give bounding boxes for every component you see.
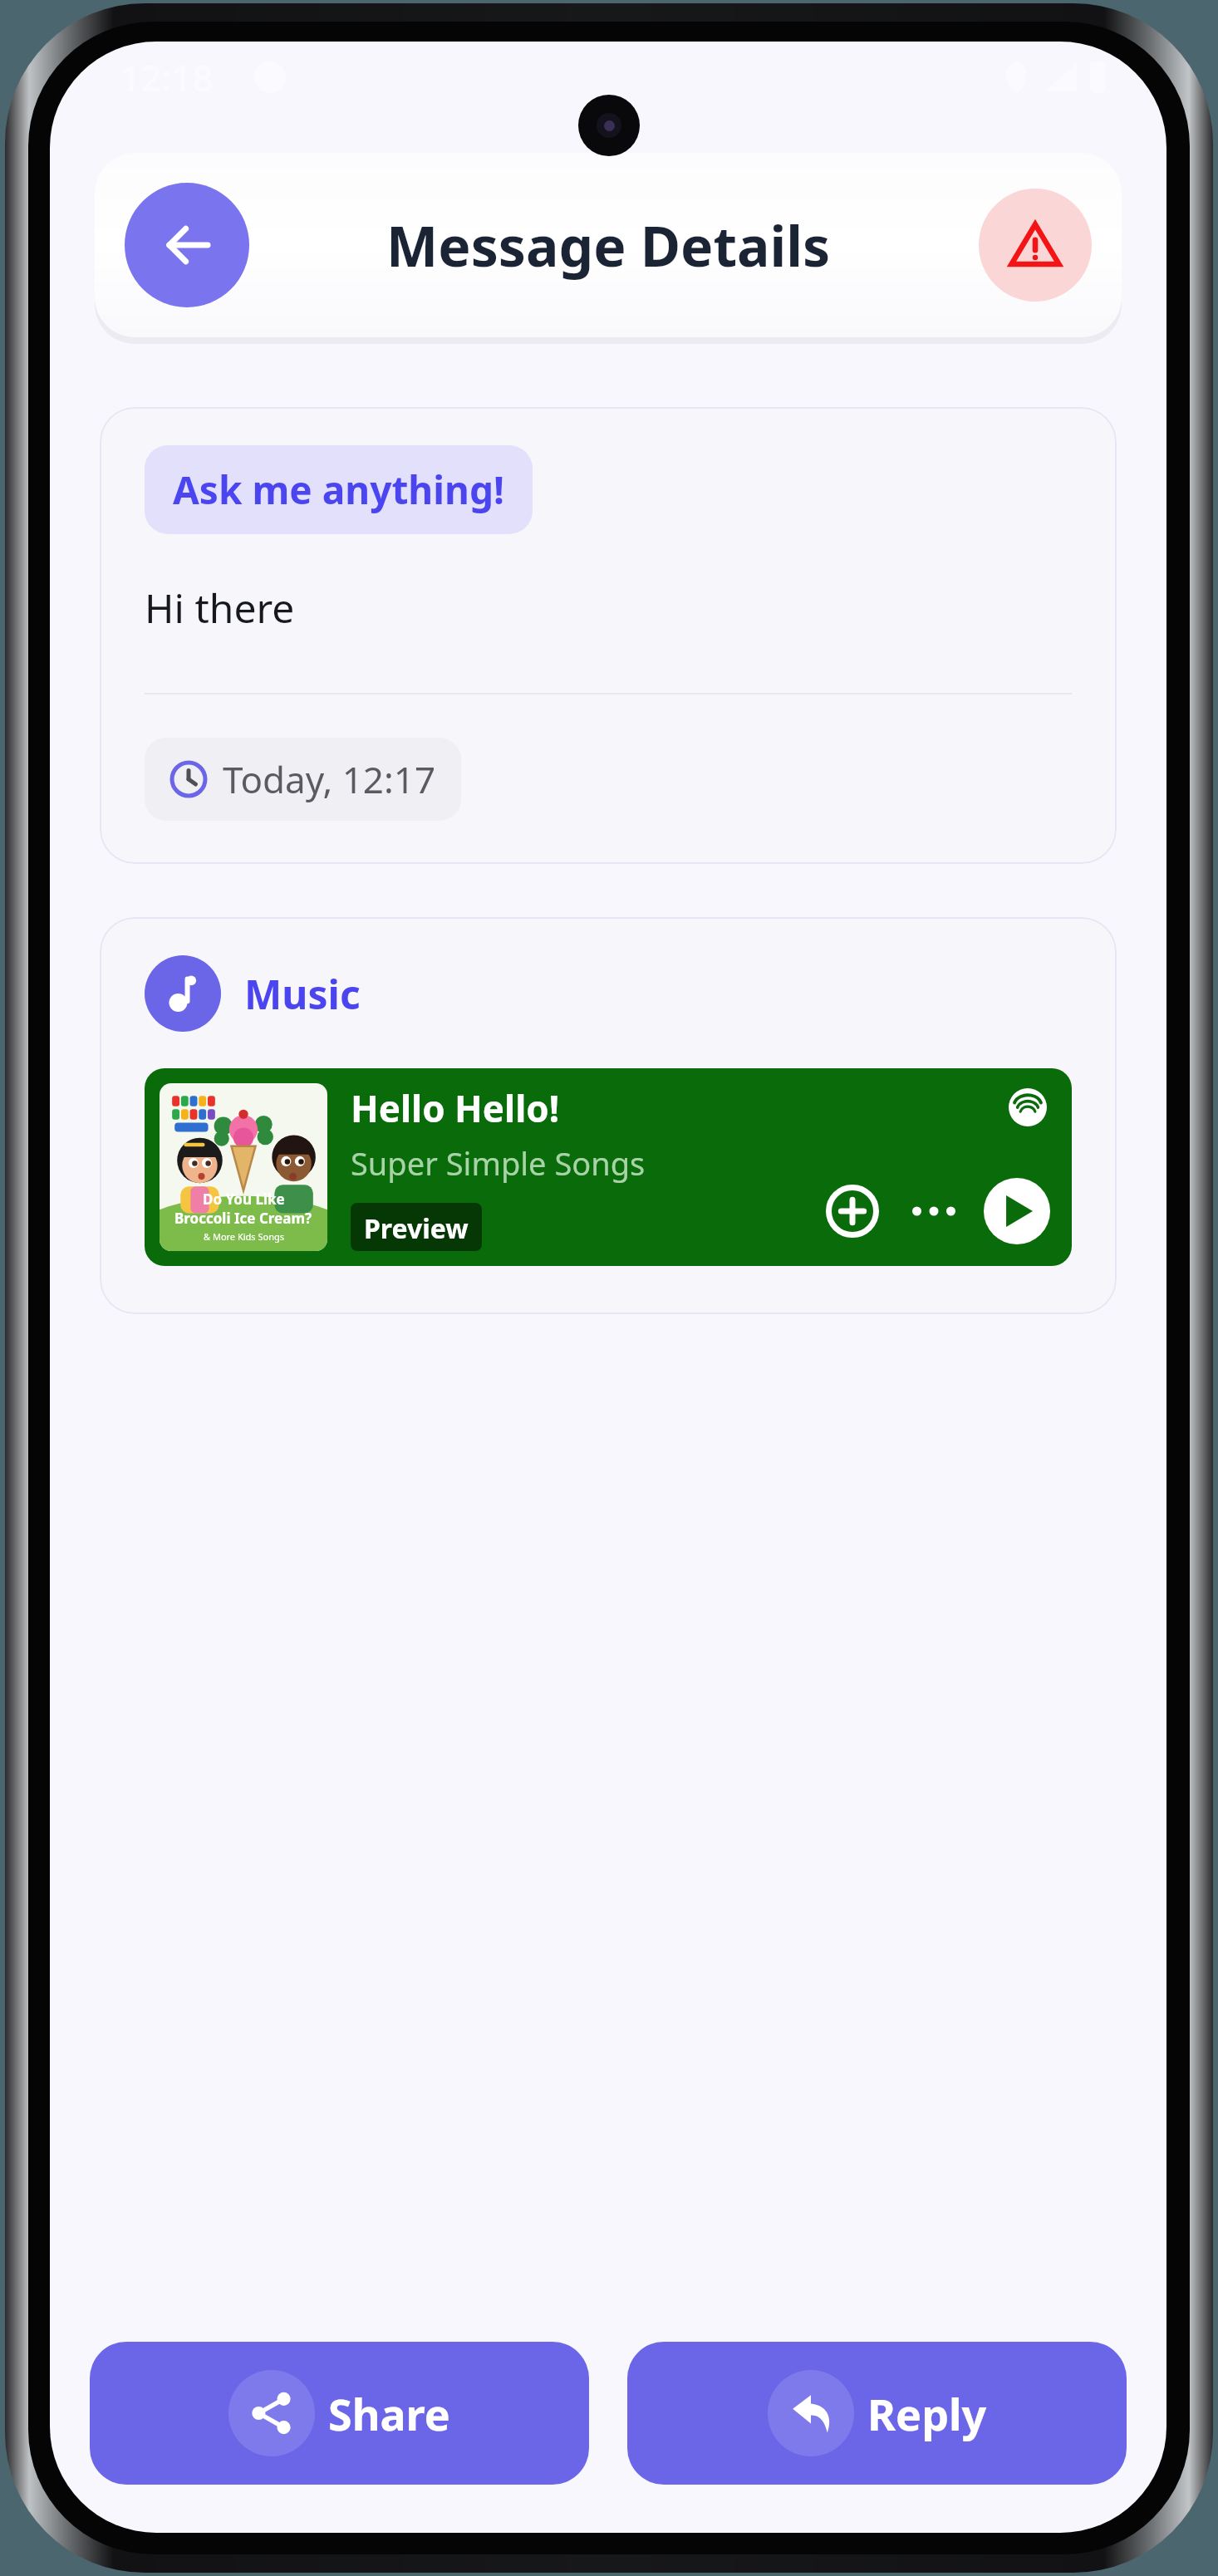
staticText: Hello Hello!	[351, 1083, 560, 1133]
staticText: Preview	[364, 1210, 469, 1244]
button[interactable]: Reply	[627, 2342, 1127, 2485]
staticText: Hi there	[145, 581, 295, 635]
staticText: Do You Like	[203, 1190, 285, 1209]
staticText: Ask me anything!	[173, 464, 504, 516]
staticText: Super Simple Songs	[351, 1141, 646, 1185]
button[interactable]: More options	[907, 1185, 960, 1238]
button[interactable]: Play	[984, 1178, 1050, 1244]
button[interactable]: Today, 12:17	[145, 738, 461, 821]
staticText: Reply	[867, 2384, 987, 2443]
button[interactable]: Share	[90, 2342, 589, 2485]
button[interactable]: Add to playlist	[826, 1185, 879, 1238]
button[interactable]: Preview	[351, 1203, 482, 1251]
button[interactable]: Back	[125, 183, 249, 307]
staticText: Broccoli Ice Cream?	[174, 1209, 312, 1228]
staticText: Today, 12:17	[223, 754, 436, 804]
button[interactable]: Ask me anything!	[100, 407, 1117, 864]
staticText: Message Details	[386, 208, 831, 282]
button[interactable]: Report problem	[979, 189, 1092, 302]
staticText: & More Kids Songs	[204, 1230, 284, 1243]
button[interactable]: Do You Like	[145, 1068, 1072, 1266]
staticText: Share	[328, 2384, 450, 2443]
staticText: Music	[244, 967, 361, 1021]
